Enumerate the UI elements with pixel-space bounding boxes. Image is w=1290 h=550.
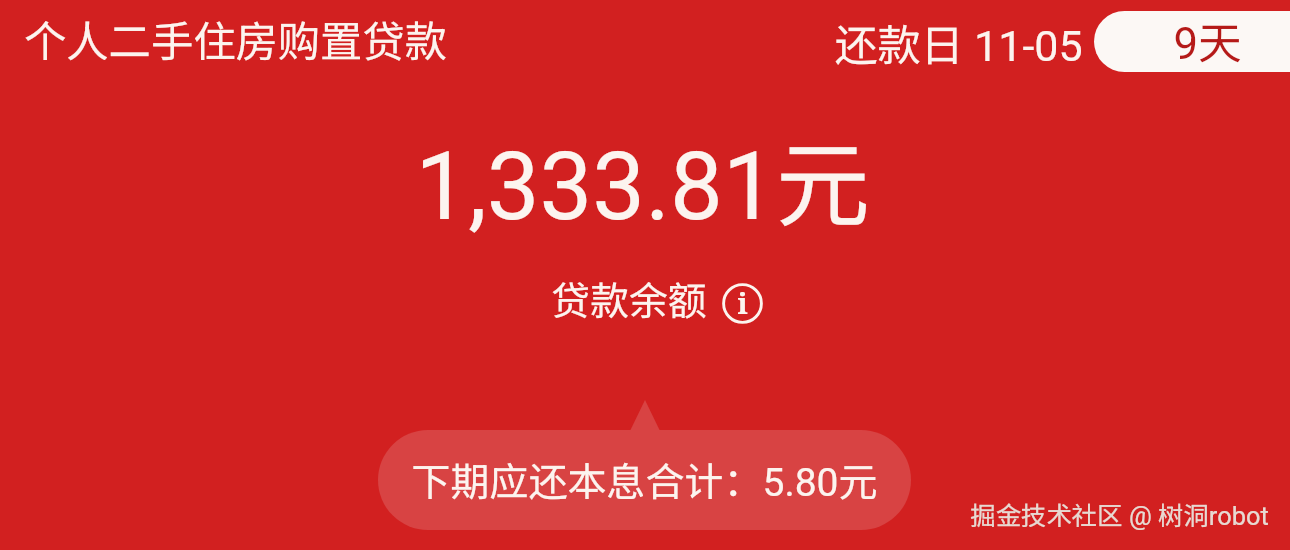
staticText: 下期应还本息合计：5.80元 [411, 451, 878, 507]
button[interactable]: 贷款余额说明 [722, 283, 763, 324]
button[interactable]: 9天 [1094, 11, 1290, 72]
button[interactable]: 还款日 11-05 [834, 11, 1083, 73]
button[interactable]: 个人二手住房购置贷款 [24, 8, 447, 69]
staticText: i [737, 283, 748, 322]
staticText: 还款日 11-05 [834, 11, 1083, 73]
staticText: 掘金技术社区 @ 树洞robot [970, 496, 1269, 533]
button[interactable]: 下期应还本息合计：5.80元 [378, 430, 911, 530]
staticText: 9天 [1173, 11, 1242, 69]
staticText: 1,333.81元 [415, 110, 870, 246]
staticText: 个人二手住房购置贷款 [24, 8, 447, 69]
staticText: 贷款余额 [551, 270, 707, 326]
